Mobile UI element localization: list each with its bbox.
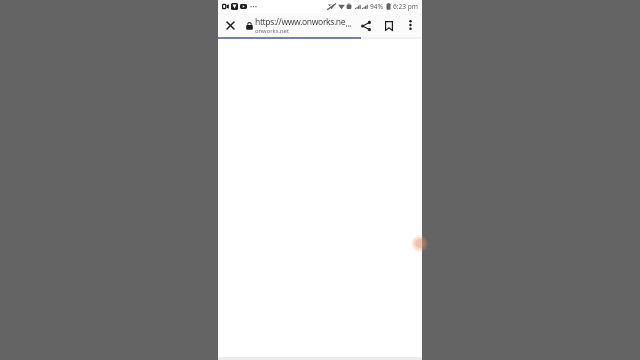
staticText: 94%: [370, 2, 384, 11]
button[interactable]: Chat: [411, 235, 428, 252]
button[interactable]: More options: [400, 15, 420, 35]
staticText: https://www.onworks.ne: [255, 16, 346, 28]
button[interactable]: Share: [355, 15, 376, 36]
button[interactable]: [244, 13, 356, 37]
button[interactable]: Close: [220, 15, 240, 35]
staticText: 6:23 pm: [393, 2, 419, 11]
button[interactable]: Bookmark: [378, 15, 399, 36]
staticText: onworks.net: [255, 27, 289, 35]
